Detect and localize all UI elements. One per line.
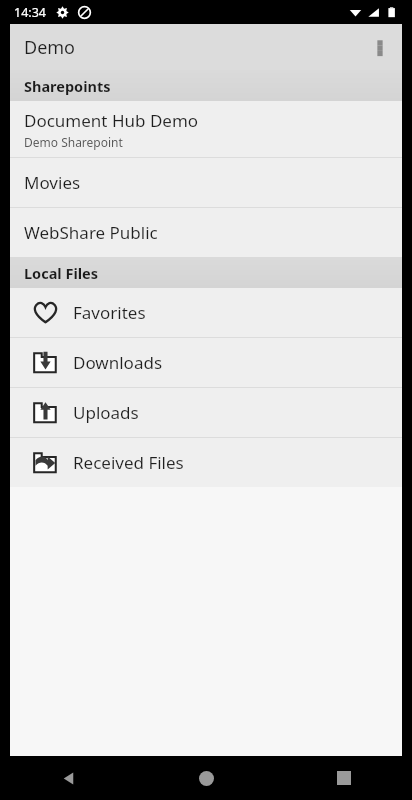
staticText: Sharepoints [24,76,111,96]
staticText: Movies [24,171,81,194]
staticText: Uploads [73,401,139,424]
staticText: 14:34 [14,4,46,21]
staticText: Downloads [73,351,163,374]
button[interactable]: Downloads [10,338,402,387]
staticText: Favorites [73,301,146,324]
button[interactable]: Movies [10,158,402,207]
staticText: Document Hub Demo [24,109,199,132]
button[interactable]: WebShare Public [10,208,402,257]
button[interactable]: Recent apps [275,756,412,800]
button[interactable]: Back [0,756,138,800]
button[interactable]: Favorites [10,288,402,337]
button[interactable]: Home [138,756,275,800]
staticText: Demo Sharepoint [24,134,123,150]
staticText: Demo [24,35,76,60]
button[interactable]: Document Hub Demo [10,101,402,157]
button[interactable]: More options [358,25,402,69]
button[interactable]: Uploads [10,388,402,437]
staticText: WebShare Public [24,221,158,244]
staticText: Received Files [73,451,184,474]
staticText: Local Files [24,263,98,283]
button[interactable]: Received Files [10,438,402,487]
